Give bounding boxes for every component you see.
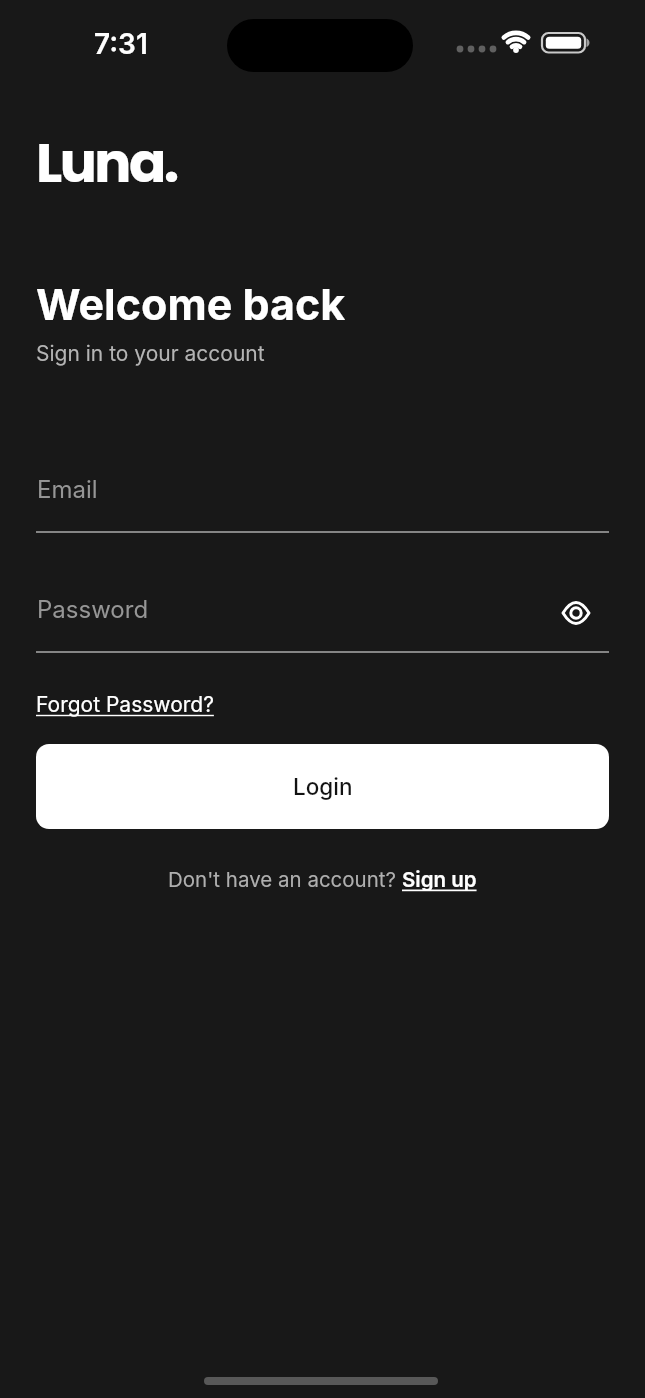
button[interactable]: Password bbox=[36, 585, 609, 653]
button[interactable]: Login bbox=[36, 744, 609, 829]
button[interactable]: Sign up bbox=[402, 867, 477, 892]
staticText: Password bbox=[37, 595, 149, 624]
staticText: Luna. bbox=[36, 124, 177, 201]
button[interactable]: Email bbox=[36, 465, 609, 533]
staticText: Don't have an account? bbox=[168, 867, 402, 892]
staticText: Email bbox=[37, 475, 98, 504]
staticText: Welcome back bbox=[36, 278, 346, 330]
button[interactable] bbox=[559, 596, 593, 630]
button[interactable]: Forgot Password? bbox=[36, 692, 214, 717]
staticText: Login bbox=[293, 773, 353, 800]
staticText: Sign in to your account bbox=[36, 341, 265, 366]
staticText: 7:31 bbox=[94, 27, 148, 61]
